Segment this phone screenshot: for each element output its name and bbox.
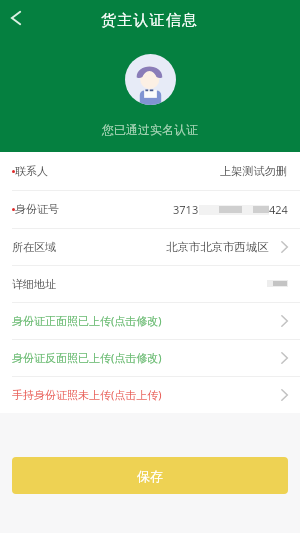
button[interactable]: 详细地址 [0,265,300,302]
staticText: 所在区域 [12,240,56,254]
staticText: 您已通过实名认证 [102,122,198,137]
staticText: 保存 [137,468,163,484]
staticText: 424 [269,202,288,217]
staticText: 身份证反面照已上传(点击修改) [12,350,162,365]
staticText: 货主认证信息 [101,11,199,30]
button[interactable]: 保存 [12,457,288,494]
button[interactable]: 身份证正面照已上传(点击修改) [0,302,300,339]
staticText: 身份证正面照已上传(点击修改) [12,313,162,328]
staticText: 3713 [173,202,199,217]
button[interactable]: 联系人 [0,152,300,190]
staticText: 联系人 [15,164,48,178]
staticText: 手持身份证照未上传(点击上传) [12,387,162,402]
button[interactable]: 所在区域 [0,228,300,265]
staticText: 身份证号 [15,202,59,216]
staticText: 上架测试勿删 [220,164,288,178]
staticText: 详细地址 [12,277,56,291]
button[interactable]: Back [2,4,30,32]
button[interactable]: 身份证反面照已上传(点击修改) [0,339,300,376]
staticText: 北京市北京市西城区 [166,240,269,254]
button[interactable]: 身份证号 [0,190,300,228]
button[interactable]: 手持身份证照未上传(点击上传) [0,376,300,413]
